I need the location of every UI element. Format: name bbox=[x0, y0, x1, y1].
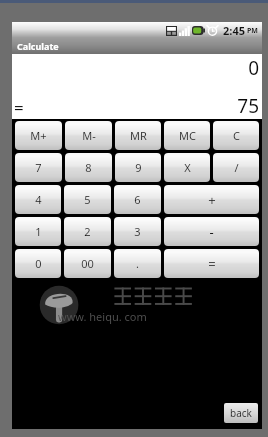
button[interactable]: 2 bbox=[64, 217, 111, 246]
staticText: www. heiqu. com bbox=[58, 309, 147, 324]
button[interactable]: = bbox=[164, 249, 259, 278]
button[interactable]: 6 bbox=[114, 185, 161, 214]
staticText: 2 bbox=[84, 224, 91, 239]
staticText: 9 bbox=[135, 160, 142, 175]
staticText: - bbox=[209, 223, 214, 241]
button[interactable]: + bbox=[164, 185, 259, 214]
staticText: PM bbox=[247, 26, 258, 36]
button[interactable]: 1 bbox=[15, 217, 61, 246]
button[interactable]: / bbox=[213, 153, 259, 182]
staticText: 5 bbox=[84, 192, 91, 207]
button[interactable]: M- bbox=[65, 121, 112, 150]
button[interactable]: 5 bbox=[64, 185, 111, 214]
button[interactable]: - bbox=[164, 217, 259, 246]
staticText: M- bbox=[82, 128, 96, 143]
staticText: MR bbox=[130, 128, 147, 143]
button[interactable]: . bbox=[114, 249, 161, 278]
button[interactable]: 3 bbox=[114, 217, 161, 246]
staticText: 0 bbox=[35, 256, 42, 271]
staticText: = bbox=[14, 96, 24, 119]
button[interactable]: MR bbox=[115, 121, 161, 150]
button[interactable]: 8 bbox=[65, 153, 112, 182]
staticText: C bbox=[233, 128, 240, 143]
button[interactable]: 9 bbox=[115, 153, 161, 182]
staticText: 6 bbox=[134, 192, 141, 207]
staticText: MC bbox=[179, 128, 196, 143]
staticText: + bbox=[208, 191, 216, 209]
staticText: X bbox=[184, 160, 191, 175]
staticText: M+ bbox=[30, 128, 47, 143]
staticText: . bbox=[136, 256, 139, 271]
staticText: = bbox=[208, 255, 216, 273]
staticText: 00 bbox=[81, 256, 94, 271]
button[interactable]: X bbox=[164, 153, 210, 182]
button[interactable]: Back bbox=[224, 403, 258, 423]
staticText: 1 bbox=[35, 224, 42, 239]
staticText: Calculate bbox=[17, 40, 59, 52]
button[interactable]: C bbox=[213, 121, 259, 150]
button[interactable]: 0 bbox=[15, 249, 61, 278]
staticText: 3 bbox=[134, 224, 141, 239]
staticText: / bbox=[234, 160, 239, 175]
button[interactable]: 4 bbox=[15, 185, 61, 214]
staticText: 7 bbox=[35, 160, 42, 175]
staticText: 2:45 bbox=[223, 23, 245, 38]
button[interactable]: 00 bbox=[64, 249, 111, 278]
staticText: 4 bbox=[35, 192, 42, 207]
button[interactable]: M+ bbox=[15, 121, 62, 150]
staticText: 75 bbox=[237, 93, 259, 119]
staticText: back bbox=[230, 406, 252, 420]
button[interactable]: MC bbox=[164, 121, 210, 150]
staticText: 0 bbox=[248, 55, 259, 81]
button[interactable]: 7 bbox=[15, 153, 62, 182]
staticText: 8 bbox=[85, 160, 92, 175]
